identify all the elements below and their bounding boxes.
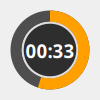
- staticText: 00:33: [25, 39, 74, 63]
- button[interactable]: Timer 00:33: [0, 0, 100, 100]
